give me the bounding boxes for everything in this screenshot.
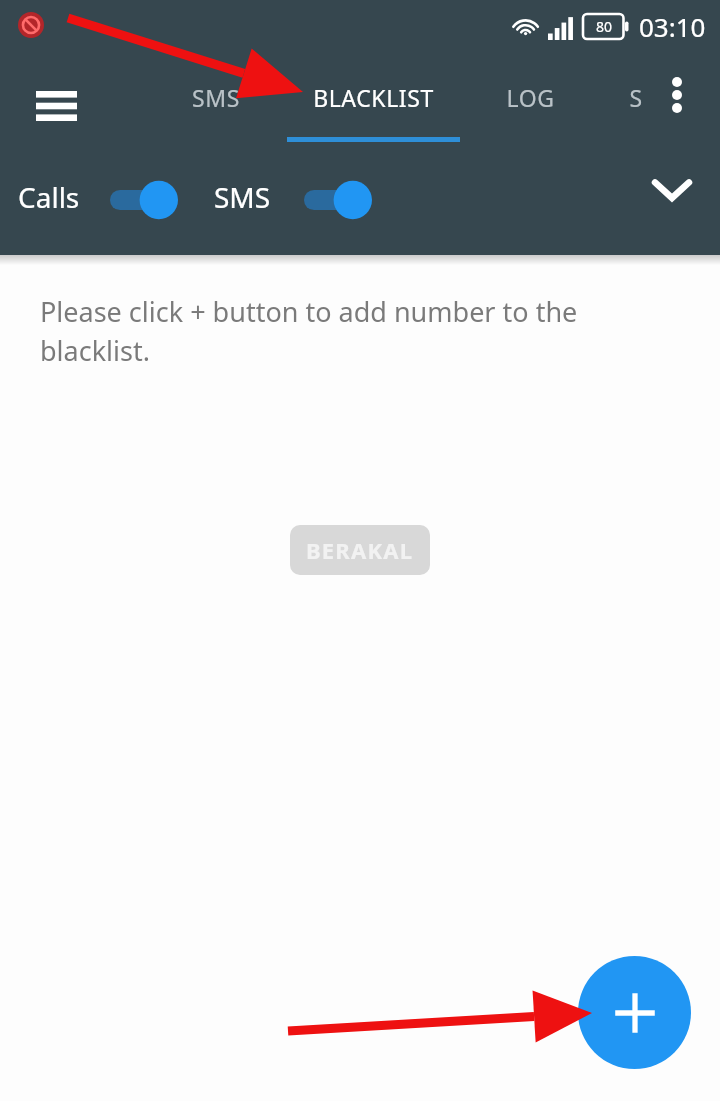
staticText: 03:10 [639, 9, 706, 44]
button[interactable]: More options [650, 68, 704, 122]
staticText: BLACKLIST [313, 82, 434, 113]
button[interactable]: Expand [642, 160, 702, 220]
button[interactable]: BLACKLIST [295, 52, 451, 142]
button[interactable]: Calls blocking [108, 176, 180, 224]
button[interactable]: Add number [578, 956, 691, 1069]
staticText: BERAKAL [306, 535, 414, 565]
button[interactable]: LOG [452, 52, 608, 142]
staticText: Please click + button to add number to t… [40, 293, 660, 369]
staticText: 80 [596, 17, 613, 36]
staticText: SMS [192, 82, 240, 113]
staticText: Calls [18, 178, 80, 216]
staticText: S [629, 82, 643, 113]
button[interactable]: SMS [138, 52, 294, 142]
staticText: LOG [506, 82, 555, 113]
button[interactable]: S [558, 52, 714, 142]
button[interactable]: Open navigation drawer [20, 70, 92, 142]
button[interactable]: SMS blocking [302, 176, 374, 224]
staticText: SMS [214, 178, 271, 216]
